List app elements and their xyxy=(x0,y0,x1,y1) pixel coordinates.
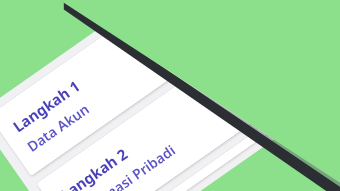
button[interactable]: Langkah 3 xyxy=(84,68,340,191)
staticText: Langkah 2 xyxy=(56,143,132,191)
button[interactable]: Langkah 2 xyxy=(36,0,340,191)
staticText: Langkah 1 xyxy=(9,75,84,136)
button[interactable]: Langkah 1 xyxy=(0,0,293,176)
staticText: Informasi Pribadi xyxy=(71,140,179,191)
staticText: Data Akun xyxy=(23,99,93,156)
